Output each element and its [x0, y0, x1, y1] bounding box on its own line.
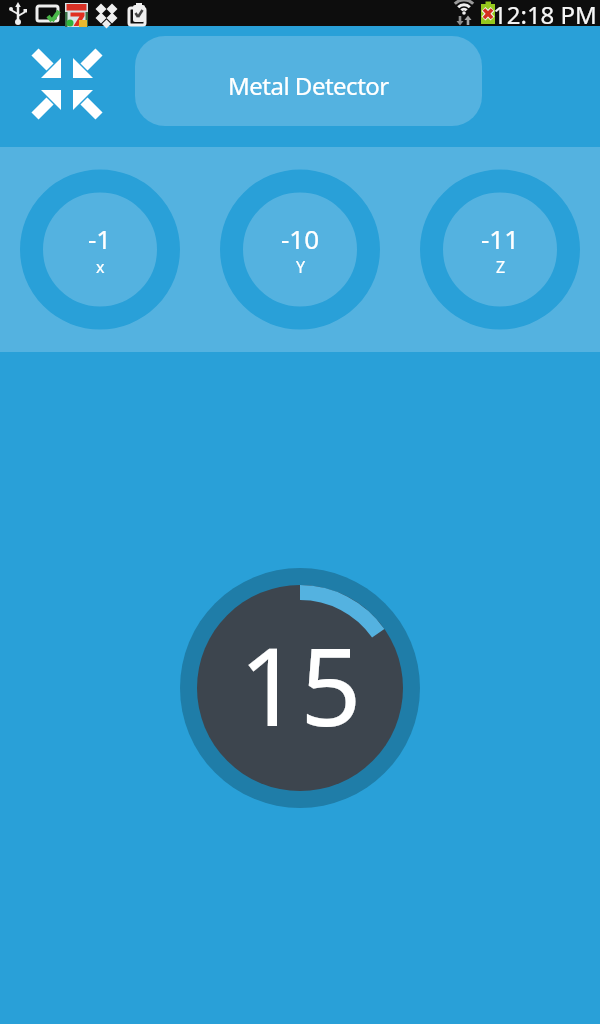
button[interactable]: 15 — [180, 568, 420, 808]
staticText: Z — [496, 256, 506, 278]
staticText: Metal Detector — [228, 69, 389, 102]
staticText: Y — [296, 256, 306, 278]
button[interactable] — [35, 52, 99, 116]
staticText: -11 — [481, 221, 520, 256]
button[interactable]: Metal Detector — [135, 36, 482, 126]
staticText: -1 — [88, 221, 112, 256]
staticText: -10 — [281, 221, 320, 256]
staticText: 12:18 PM — [493, 0, 597, 24]
staticText: x — [96, 256, 105, 278]
staticText: 15 — [239, 612, 362, 758]
